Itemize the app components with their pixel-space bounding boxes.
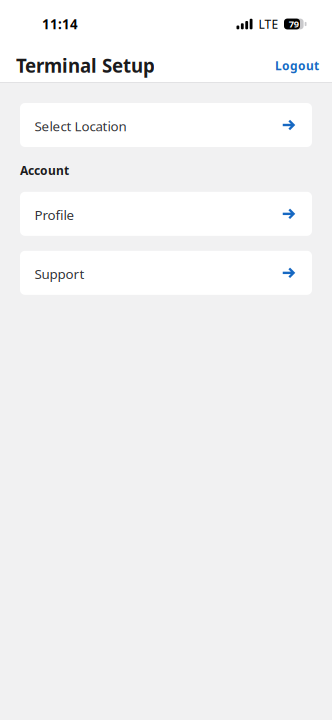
staticText: 79 [289,18,299,30]
staticText: LTE [258,16,278,32]
button[interactable]: Support [20,251,312,295]
button[interactable]: Logout [265,51,319,79]
staticText: Profile [34,206,74,224]
button[interactable]: Select Location [20,103,312,147]
staticText: Account [20,162,69,178]
button[interactable]: Profile [20,192,312,236]
staticText: Terminal Setup [16,53,155,78]
staticText: Logout [275,57,319,73]
staticText: Select Location [34,117,126,135]
staticText: 11:14 [42,15,78,33]
staticText: Support [34,265,84,283]
